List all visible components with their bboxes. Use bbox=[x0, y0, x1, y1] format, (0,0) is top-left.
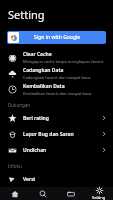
staticText: Clear Cache bbox=[23, 51, 52, 58]
button[interactable]: Versi bbox=[0, 171, 113, 187]
staticText: Beri rating bbox=[23, 115, 101, 122]
button[interactable]: Lapor Bug dan Saran bbox=[0, 126, 113, 142]
staticText: Setting bbox=[8, 7, 45, 22]
button[interactable]: Home bbox=[0, 187, 29, 200]
staticText: Setting bbox=[92, 195, 106, 200]
button[interactable]: Setting bbox=[85, 187, 113, 200]
staticText: Kembalikan favorit dan riwayat baca bbox=[23, 91, 92, 96]
staticText: Lapor Bug dan Saran bbox=[23, 131, 101, 138]
staticText: Undichan bbox=[23, 147, 101, 154]
button[interactable]: Cadangkan Data bbox=[0, 65, 113, 81]
staticText: Sign in with Google bbox=[34, 34, 81, 41]
staticText: Mengapus cache tanpa menghapus favorit d… bbox=[23, 59, 107, 64]
staticText: Kembalikan Data bbox=[23, 83, 65, 90]
button[interactable]: Undichan bbox=[0, 142, 113, 158]
button[interactable]: Library bbox=[57, 187, 85, 200]
button[interactable]: Search bbox=[29, 187, 57, 200]
staticText: Versi bbox=[23, 176, 107, 183]
button[interactable]: Sign in with Google bbox=[7, 31, 106, 44]
button[interactable]: Kembalikan Data bbox=[0, 81, 113, 97]
staticText: Cadangkan favorit dan riwayat baca bbox=[23, 75, 91, 80]
staticText: Cadangkan Data bbox=[23, 67, 64, 74]
staticText: Infoku bbox=[8, 163, 22, 169]
button[interactable]: Beri rating bbox=[0, 110, 113, 126]
staticText: Dukungan bbox=[8, 102, 31, 108]
button[interactable]: Clear Cache bbox=[0, 49, 113, 65]
